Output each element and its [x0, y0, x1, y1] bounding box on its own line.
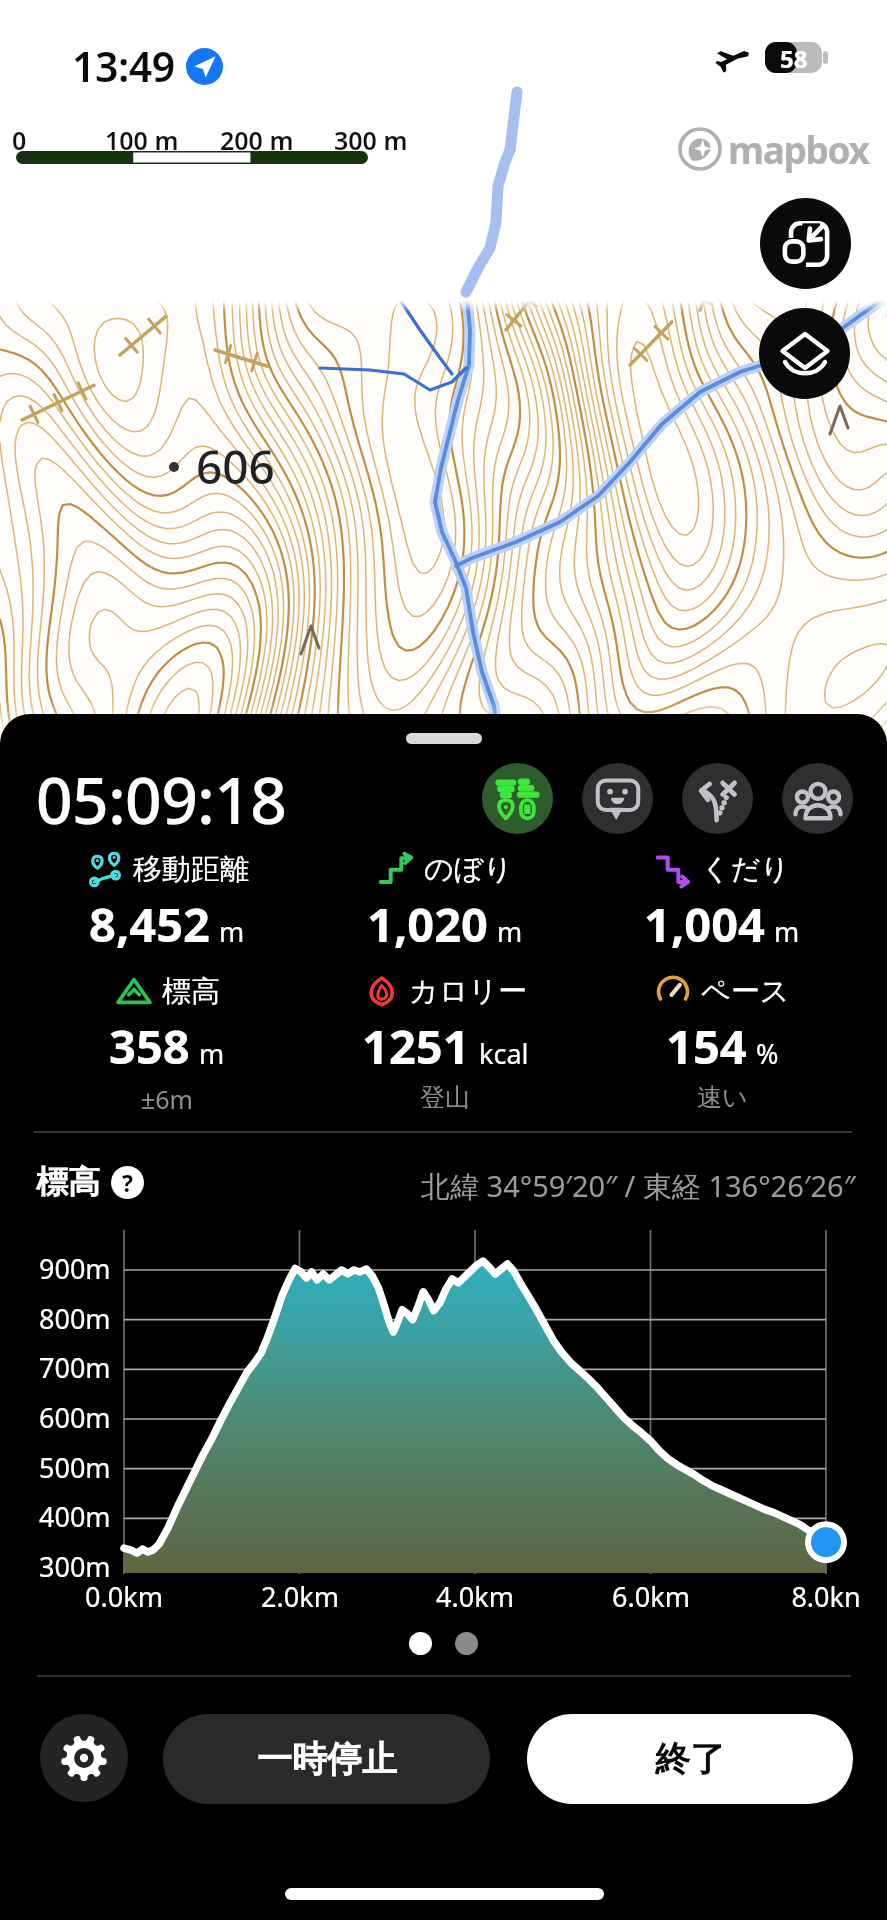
- button[interactable]: Help: [111, 1166, 144, 1199]
- staticText: 一時停止: [257, 1737, 397, 1781]
- staticText: 300 m: [334, 123, 408, 157]
- staticText: 標高: [162, 973, 220, 1010]
- button[interactable]: 終了: [527, 1714, 853, 1804]
- button[interactable]: Route deviation: [682, 763, 753, 834]
- staticText: 500m: [39, 1449, 111, 1486]
- button[interactable]: Fit to route: [760, 198, 851, 289]
- staticText: 100 m: [105, 123, 179, 157]
- staticText: 900m: [39, 1250, 111, 1287]
- staticText: 0.0km: [54, 1578, 194, 1615]
- staticText: 200 m: [220, 123, 294, 157]
- staticText: mapbox: [728, 124, 869, 174]
- staticText: 1,004: [644, 892, 765, 956]
- staticText: 13:49: [72, 38, 175, 94]
- staticText: 移動距離: [133, 851, 249, 888]
- staticText: 8.0kn: [756, 1578, 887, 1615]
- staticText: 0: [12, 123, 27, 157]
- staticText: %: [756, 1035, 779, 1072]
- staticText: 登山: [420, 1082, 470, 1113]
- button[interactable]: 一時停止: [163, 1714, 490, 1804]
- staticText: 6.0km: [581, 1578, 721, 1615]
- button[interactable]: Water intake: [482, 763, 553, 834]
- staticText: 8,452: [89, 892, 210, 956]
- staticText: 58: [780, 42, 808, 73]
- staticText: 1,020: [367, 892, 488, 956]
- staticText: 終了: [655, 1737, 725, 1781]
- staticText: 2.0km: [230, 1578, 370, 1615]
- staticText: 標高: [36, 1162, 100, 1202]
- staticText: 05:09:18: [36, 756, 287, 843]
- button[interactable]: Map layers: [759, 308, 850, 399]
- staticText: 4.0km: [405, 1578, 545, 1615]
- staticText: ±6m: [141, 1082, 193, 1116]
- staticText: m: [199, 1035, 225, 1072]
- staticText: m: [774, 913, 800, 950]
- button[interactable]: Chat: [582, 763, 653, 834]
- staticText: ?: [122, 1167, 133, 1198]
- staticText: 600m: [39, 1399, 111, 1436]
- staticText: くだり: [701, 851, 791, 888]
- staticText: m: [497, 913, 523, 950]
- staticText: 北緯 34°59′20″ / 東経 136°26′26″: [421, 1166, 856, 1206]
- button[interactable]: Settings: [40, 1714, 128, 1802]
- staticText: 154: [666, 1014, 747, 1078]
- staticText: のぼり: [424, 851, 514, 888]
- staticText: 400m: [39, 1498, 111, 1535]
- staticText: 606: [196, 435, 275, 498]
- staticText: ペース: [701, 973, 790, 1010]
- staticText: 速い: [697, 1082, 748, 1113]
- staticText: 300m: [39, 1548, 111, 1585]
- staticText: m: [219, 913, 245, 950]
- staticText: 358: [109, 1014, 190, 1078]
- staticText: 700m: [39, 1349, 111, 1386]
- staticText: 800m: [39, 1300, 111, 1337]
- staticText: kcal: [479, 1035, 529, 1072]
- button[interactable]: Members: [782, 763, 853, 834]
- staticText: カロリー: [409, 973, 528, 1010]
- staticText: 1251: [362, 1014, 470, 1078]
